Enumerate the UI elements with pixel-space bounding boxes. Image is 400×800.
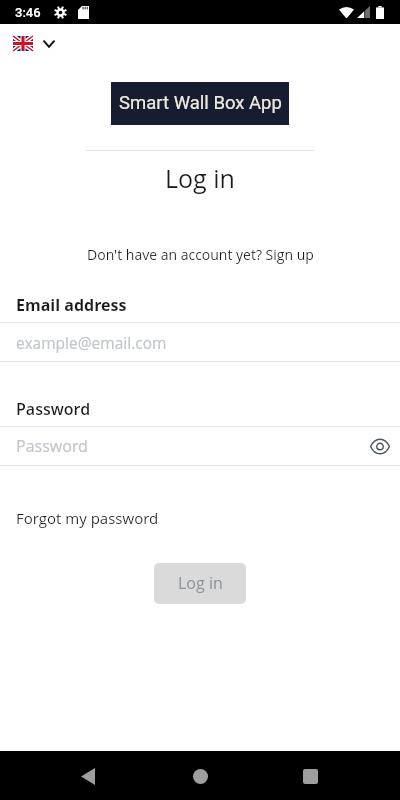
staticText: Log in xyxy=(178,572,223,594)
button[interactable]: Home xyxy=(176,752,224,800)
staticText: example@email.com xyxy=(16,332,167,353)
button[interactable]: Recent apps xyxy=(286,752,334,800)
button[interactable]: Forgot my password xyxy=(16,508,159,528)
staticText: Log in xyxy=(165,161,235,195)
staticText: Password xyxy=(16,435,88,457)
button[interactable]: example@email.com xyxy=(0,322,400,362)
button[interactable]: Smart Wall Box App xyxy=(111,82,289,125)
staticText: Email address xyxy=(16,294,127,316)
staticText: Password xyxy=(16,398,91,420)
button[interactable]: Change language xyxy=(5,32,63,55)
button[interactable]: Show password xyxy=(360,432,400,461)
button[interactable]: Log in xyxy=(154,563,246,604)
button[interactable]: Password xyxy=(0,426,400,466)
button[interactable]: Back xyxy=(64,752,112,800)
staticText: Smart Wall Box App xyxy=(119,92,282,114)
button[interactable]: Don't have an account yet? Sign up xyxy=(87,245,314,264)
staticText: 3:46 xyxy=(15,5,41,20)
